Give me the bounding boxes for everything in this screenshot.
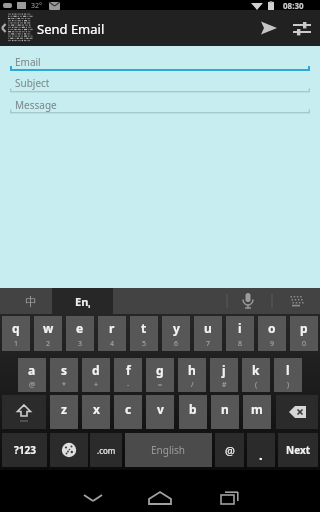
staticText: n (221, 401, 229, 417)
staticText: / (191, 380, 194, 390)
staticText: 9 (270, 339, 275, 349)
button[interactable] (2, 395, 46, 429)
staticText: 1 (14, 339, 19, 349)
staticText: ) (287, 380, 290, 390)
button[interactable]: m (243, 395, 271, 429)
staticText: Enˌ (75, 294, 91, 309)
staticText: 2 (46, 339, 51, 349)
staticText: Message (15, 98, 57, 112)
button[interactable]: Next (278, 433, 318, 467)
staticText: # (222, 380, 227, 390)
staticText: ?123 (14, 443, 36, 457)
staticText: x (93, 401, 100, 417)
staticText: - (127, 380, 130, 390)
staticText: b (189, 401, 197, 417)
button[interactable] (288, 14, 316, 42)
button[interactable]: Subject (8, 73, 312, 93)
staticText: Subject (15, 76, 50, 90)
button[interactable]: k (242, 358, 270, 392)
button[interactable]: y (162, 316, 190, 351)
staticText: e (76, 320, 84, 336)
button[interactable]: p (290, 316, 318, 351)
button[interactable] (72, 476, 112, 506)
staticText: i (238, 320, 242, 336)
staticText: English (151, 443, 186, 457)
staticText: p (300, 320, 308, 336)
staticText: m (251, 401, 263, 417)
staticText: 6 (174, 339, 179, 349)
button[interactable]: . (247, 433, 275, 467)
staticText: q (12, 320, 20, 336)
staticText: j (222, 362, 226, 378)
button[interactable] (140, 476, 180, 506)
button[interactable]: ?123 (2, 433, 47, 467)
staticText: 32° (31, 1, 43, 11)
staticText: 5 (142, 339, 147, 349)
button[interactable]: English (125, 433, 212, 467)
button[interactable]: z (50, 395, 78, 429)
button[interactable]: d (82, 358, 110, 392)
staticText: u (204, 320, 212, 336)
staticText: a (28, 362, 36, 378)
button[interactable]: a (18, 358, 46, 392)
staticText: * (62, 380, 66, 390)
staticText: Send Email (37, 20, 105, 38)
button[interactable]: 中 (12, 288, 50, 314)
staticText: f (126, 362, 131, 378)
button[interactable]: q (2, 316, 30, 351)
staticText: c (125, 401, 132, 417)
staticText: t (141, 320, 147, 336)
button[interactable]: @ (215, 433, 244, 467)
staticText: k (252, 362, 260, 378)
button[interactable]: v (146, 395, 174, 429)
button[interactable]: Message (8, 94, 312, 114)
button[interactable]: l (274, 358, 302, 392)
button[interactable]: Email (8, 52, 312, 73)
staticText: w (43, 320, 54, 336)
staticText: o (268, 320, 276, 336)
staticText: Email (15, 55, 41, 69)
button[interactable]: g (146, 358, 174, 392)
staticText: Next (286, 443, 311, 457)
staticText: 8 (238, 339, 243, 349)
button[interactable]: r (98, 316, 126, 351)
button[interactable]: u (194, 316, 222, 351)
button[interactable]: i (226, 316, 254, 351)
staticText: 4 (110, 339, 115, 349)
staticText: = (158, 380, 163, 390)
button[interactable] (228, 288, 271, 314)
staticText: @ (29, 380, 36, 390)
staticText: g (156, 362, 164, 378)
staticText: s (61, 362, 68, 378)
staticText: + (94, 380, 99, 390)
staticText: . (259, 446, 263, 464)
button[interactable]: w (34, 316, 62, 351)
staticText: ( (255, 380, 258, 390)
button[interactable]: e (66, 316, 94, 351)
button[interactable]: f (114, 358, 142, 392)
button[interactable]: s (50, 358, 78, 392)
button[interactable]: j (210, 358, 238, 392)
button[interactable]: o (258, 316, 286, 351)
staticText: r (109, 320, 115, 336)
button[interactable]: x (82, 395, 110, 429)
button[interactable] (276, 395, 318, 429)
button[interactable]: t (130, 316, 158, 351)
staticText: d (92, 362, 100, 378)
button[interactable]: .com (90, 433, 122, 467)
button[interactable]: b (179, 395, 207, 429)
staticText: v (157, 401, 164, 417)
staticText: 7 (206, 339, 211, 349)
staticText: l (286, 362, 290, 378)
staticText: z (61, 401, 67, 417)
staticText: 08:30 (283, 0, 304, 10)
button[interactable] (273, 288, 319, 314)
staticText: y (173, 320, 180, 336)
button[interactable] (50, 433, 88, 467)
button[interactable]: n (211, 395, 239, 429)
button[interactable]: c (114, 395, 142, 429)
button[interactable] (252, 14, 284, 42)
button[interactable] (208, 476, 248, 506)
button[interactable]: Enˌ (52, 288, 113, 314)
button[interactable]: h (178, 358, 206, 392)
